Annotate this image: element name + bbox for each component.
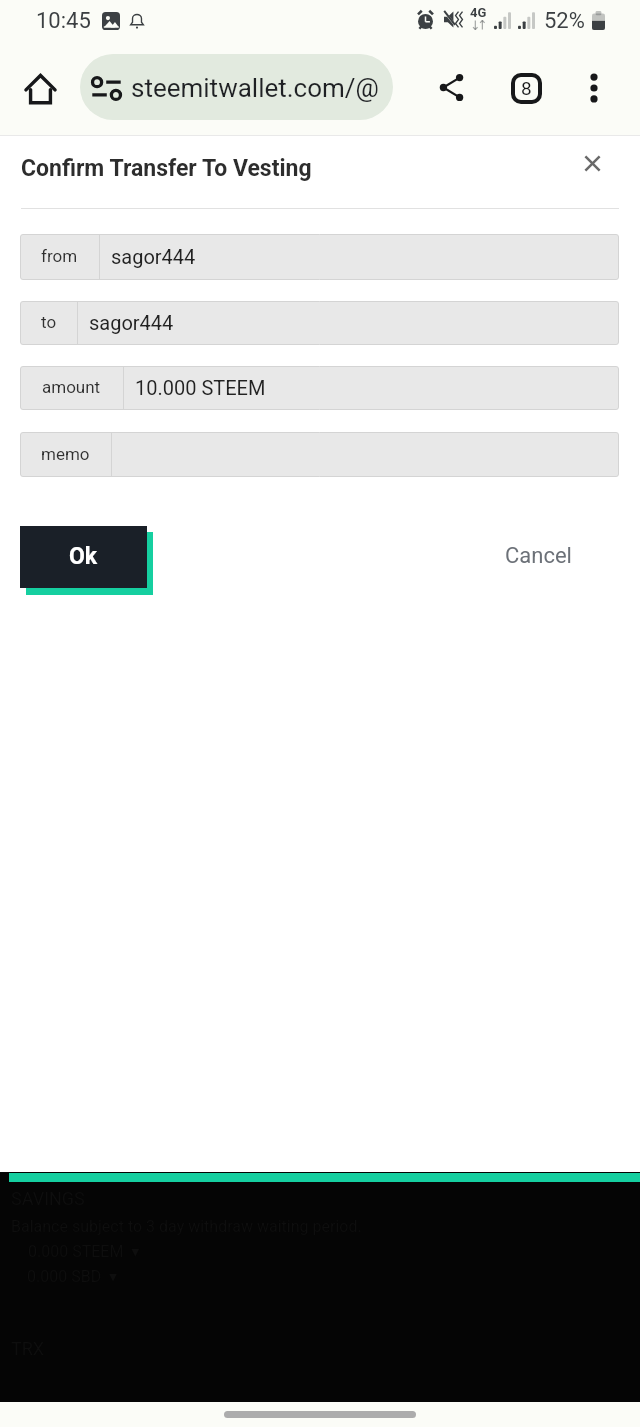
button[interactable]: Share <box>427 46 475 136</box>
button[interactable]: amount <box>20 366 619 410</box>
staticText: steemitwallet.com/@ <box>131 73 379 103</box>
staticText: 10.000 STEEM <box>135 376 266 399</box>
staticText: sagor444 <box>111 245 196 268</box>
staticText: sagor444 <box>89 311 174 334</box>
staticText: memo <box>41 444 90 464</box>
staticText: amount <box>42 377 101 397</box>
button[interactable]: Cancel <box>490 530 586 582</box>
staticText: Cancel <box>505 543 572 569</box>
staticText: 10:45 <box>36 8 91 34</box>
button[interactable]: steemitwallet.com/@ <box>80 54 393 120</box>
button[interactable]: Switch tabs, 8 open <box>503 46 551 136</box>
button[interactable]: Ok <box>20 526 147 588</box>
button[interactable]: to <box>20 301 619 345</box>
staticText: to <box>41 312 57 332</box>
button[interactable]: More options <box>569 46 617 136</box>
button[interactable]: Home <box>16 46 64 136</box>
button[interactable]: from <box>20 234 619 280</box>
staticText: 8 <box>521 77 532 99</box>
staticText: Ok <box>69 543 98 570</box>
staticText: Confirm Transfer To Vesting <box>21 155 312 182</box>
staticText: 52% <box>544 8 585 34</box>
staticText: from <box>41 246 78 266</box>
button[interactable]: Close dialog <box>569 142 613 186</box>
button[interactable]: memo <box>20 432 619 477</box>
staticText: 4G <box>470 5 487 20</box>
